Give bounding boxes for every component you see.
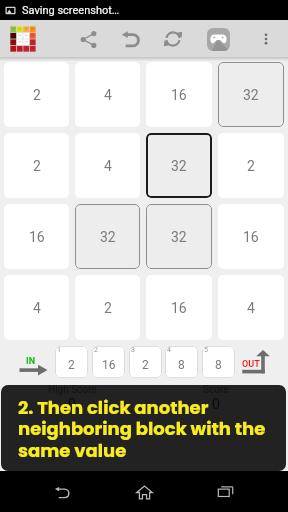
staticText: 0 <box>68 396 76 412</box>
staticText: neighboring block with the <box>18 416 266 441</box>
button[interactable]: 2 <box>92 346 125 378</box>
staticText: High Score <box>48 384 97 396</box>
button[interactable]: Share <box>70 21 106 57</box>
staticText: 2 <box>33 87 41 103</box>
button[interactable]: 32 <box>146 133 212 198</box>
staticText: 8 <box>215 358 222 372</box>
button[interactable]: Home <box>124 472 164 512</box>
staticText: IN <box>26 356 35 367</box>
staticText: 4 <box>167 346 171 354</box>
button[interactable]: Restart <box>155 21 191 57</box>
staticText: 0 <box>212 396 220 412</box>
button[interactable]: Outgoing blocks <box>240 348 282 380</box>
button[interactable]: Play Games <box>200 21 236 57</box>
button[interactable]: 16 <box>146 275 212 340</box>
button[interactable]: 16 <box>146 62 212 127</box>
staticText: 4 <box>104 87 112 103</box>
staticText: OUT <box>242 359 260 370</box>
button[interactable]: 2. Then click another <box>1 385 286 471</box>
staticText: 32 <box>100 229 116 245</box>
staticText: 4 <box>247 300 255 316</box>
button[interactable]: Ennea 2048 <box>5 21 41 57</box>
button[interactable]: More options <box>248 21 284 57</box>
button[interactable]: 2 <box>4 62 69 127</box>
button[interactable]: 16 <box>4 204 69 269</box>
staticText: Saving screenshot… <box>22 4 120 17</box>
button[interactable]: Undo <box>113 21 149 57</box>
button[interactable]: 2 <box>75 275 140 340</box>
button[interactable]: 4 <box>4 275 69 340</box>
staticText: 2 <box>247 158 255 174</box>
staticText: 32 <box>171 158 187 174</box>
button[interactable]: 32 <box>146 204 212 269</box>
button[interactable]: 1 <box>55 346 88 378</box>
button[interactable]: 4 <box>75 133 140 198</box>
staticText: 2 <box>104 300 112 316</box>
button[interactable]: 32 <box>75 204 140 269</box>
staticText: 16 <box>29 229 45 245</box>
staticText: 16 <box>171 87 187 103</box>
button[interactable]: Incoming blocks <box>14 350 52 378</box>
button[interactable]: 32 <box>218 62 284 127</box>
button[interactable]: 4 <box>218 275 284 340</box>
button[interactable]: 2 <box>218 133 284 198</box>
staticText: 4 <box>104 158 112 174</box>
staticText: 4 <box>33 300 41 316</box>
staticText: 3 <box>131 346 135 354</box>
button[interactable]: 3 <box>129 346 162 378</box>
button[interactable]: 4 <box>165 346 198 378</box>
button[interactable]: 16 <box>218 204 284 269</box>
staticText: Score <box>203 384 229 396</box>
staticText: 2 <box>94 346 98 354</box>
staticText: 2. Then click another <box>18 395 209 420</box>
staticText: 16 <box>102 358 116 372</box>
staticText: 2 <box>33 158 41 174</box>
staticText: 2 <box>68 358 75 372</box>
button[interactable]: Back <box>42 472 82 512</box>
staticText: 16 <box>243 229 259 245</box>
staticText: 8 <box>178 358 185 372</box>
button[interactable]: 4 <box>75 62 140 127</box>
button[interactable]: 5 <box>202 346 235 378</box>
staticText: 2 <box>142 358 149 372</box>
button[interactable]: 2 <box>4 133 69 198</box>
staticText: same value <box>18 438 127 463</box>
staticText: 32 <box>171 229 187 245</box>
staticText: 16 <box>171 300 187 316</box>
staticText: 5 <box>204 346 208 354</box>
button[interactable]: Recent apps <box>206 472 246 512</box>
staticText: 1 <box>57 346 61 354</box>
staticText: 32 <box>243 87 259 103</box>
